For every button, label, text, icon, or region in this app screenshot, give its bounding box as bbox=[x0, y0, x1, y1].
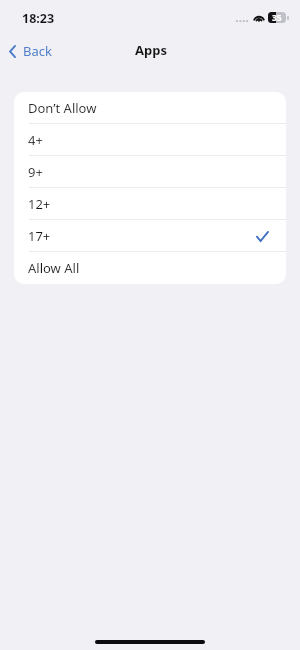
staticText: 9+ bbox=[28, 163, 43, 181]
staticText: 12+ bbox=[28, 195, 51, 213]
staticText: 4+ bbox=[28, 131, 43, 149]
button[interactable]: Don’t Allow bbox=[14, 92, 286, 124]
other: Cellular signal bbox=[236, 18, 250, 23]
staticText: Allow All bbox=[28, 259, 80, 277]
button[interactable]: 12+ bbox=[14, 188, 286, 220]
staticText: Don’t Allow bbox=[28, 99, 97, 117]
staticText: Apps bbox=[135, 41, 167, 59]
button[interactable]: Allow All bbox=[14, 252, 286, 284]
other: Battery 35 percent bbox=[268, 12, 286, 23]
button[interactable]: 17+ bbox=[14, 220, 286, 252]
staticText: 17+ bbox=[28, 227, 51, 245]
button[interactable]: Back bbox=[2, 38, 60, 64]
staticText: 18:23 bbox=[22, 10, 55, 27]
staticText: 35 bbox=[272, 12, 282, 23]
other: Wi-Fi bbox=[253, 13, 265, 22]
button[interactable]: 9+ bbox=[14, 156, 286, 188]
button[interactable]: 4+ bbox=[14, 124, 286, 156]
staticText: Back bbox=[23, 42, 52, 60]
